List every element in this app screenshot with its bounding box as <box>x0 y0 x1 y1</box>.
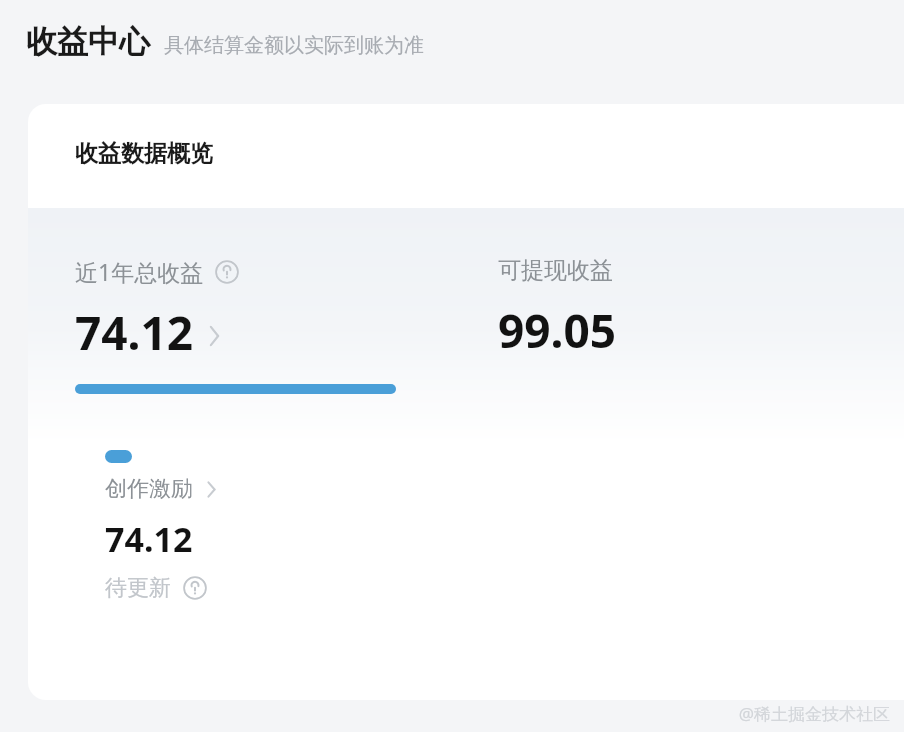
other: 查看收益详情 <box>208 324 221 348</box>
staticText: 可提现收益 <box>498 256 613 285</box>
other: 查看创作激励详情 <box>206 480 217 499</box>
staticText: 74.12 <box>105 516 193 562</box>
staticText: 近1年总收益 <box>75 256 204 287</box>
staticText: 具体结算金额以实际到账为准 <box>164 33 424 58</box>
button[interactable]: 待更新 <box>105 574 207 602</box>
staticText: 创作激励 <box>105 475 193 503</box>
staticText: @稀土掘金技术社区 <box>738 702 890 725</box>
staticText: 74.12 <box>75 301 194 364</box>
other: 关于待更新的说明 <box>183 576 207 600</box>
button[interactable]: 74.12 <box>75 301 221 364</box>
button[interactable]: 创作激励 <box>105 475 217 503</box>
staticText: 收益中心 <box>26 22 150 61</box>
button[interactable]: 近1年总收益 <box>75 256 239 287</box>
staticText: 待更新 <box>105 574 171 602</box>
staticText: 99.05 <box>498 299 617 362</box>
staticText: 收益数据概览 <box>75 139 213 168</box>
other: 关于近1年总收益的说明 <box>215 260 239 284</box>
